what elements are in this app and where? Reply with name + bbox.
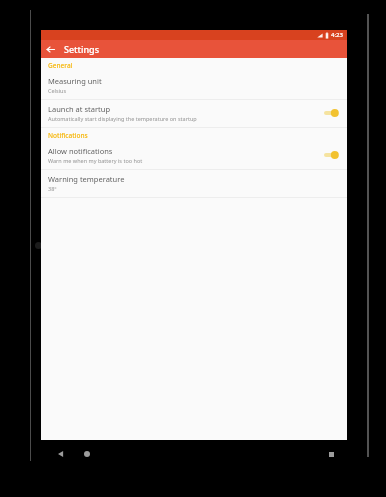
button[interactable]: Launch at startup [41,100,347,127]
staticText: Notifications [48,131,88,140]
staticText: Automatically start displaying the tempe… [48,115,197,122]
staticText: Warning temperature [48,174,125,184]
staticText: Launch at startup [48,104,111,114]
button[interactable]: Back [41,40,59,58]
staticText: General [48,61,73,70]
staticText: Warn me when my battery is too hot [48,157,143,164]
button[interactable]: Recent apps [323,446,339,462]
button[interactable]: Toggle Allow notifications [321,149,341,161]
button[interactable]: Measuring unit [41,72,347,99]
staticText: Allow notifications [48,146,113,156]
staticText: Measuring unit [48,76,102,86]
button[interactable]: Home [79,446,95,462]
staticText: Celsius [48,87,67,94]
button[interactable]: Back [53,446,69,462]
button[interactable]: Warning temperature [41,170,347,197]
staticText: Settings [64,43,100,55]
button[interactable]: Toggle Launch at startup [321,107,341,119]
staticText: 4:23 [331,31,343,39]
staticText: 38° [48,185,57,192]
button[interactable]: Allow notifications [41,142,347,169]
